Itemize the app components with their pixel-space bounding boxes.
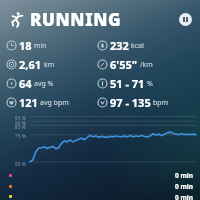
staticText: /km xyxy=(140,60,153,70)
staticText: 0 min xyxy=(175,193,193,200)
staticText: 90 % xyxy=(0,120,26,127)
button[interactable]: 121 xyxy=(7,95,69,110)
button[interactable]: 2,61 xyxy=(7,57,55,72)
button[interactable]: 18 xyxy=(7,38,47,53)
staticText: 232 xyxy=(110,38,129,53)
button[interactable]: 0 min xyxy=(9,182,193,191)
staticText: 0 min xyxy=(175,182,193,191)
staticText: bpm xyxy=(153,98,169,108)
staticText: 64 xyxy=(19,76,32,91)
staticText: % xyxy=(147,79,153,89)
button[interactable]: 0 min xyxy=(9,193,193,200)
button[interactable]: 97 - 135 xyxy=(98,95,169,110)
staticText: 2,61 xyxy=(19,57,42,72)
staticText: 97 - 135 xyxy=(110,95,151,110)
staticText: 121 xyxy=(19,95,38,110)
staticText: 18 xyxy=(19,38,32,53)
staticText: avg bpm xyxy=(40,98,69,108)
staticText: 85 % xyxy=(0,124,26,131)
staticText: min xyxy=(34,41,47,51)
staticText: 75 % xyxy=(0,133,26,140)
button[interactable]: 0 min xyxy=(9,171,193,180)
button[interactable]: 51 - 71 xyxy=(98,76,153,91)
button[interactable]: 64 xyxy=(7,76,54,91)
staticText: 95 % xyxy=(0,115,26,122)
button[interactable]: 6'55" xyxy=(98,57,153,72)
staticText: km xyxy=(44,60,55,70)
staticText: 51 - 71 xyxy=(110,76,145,91)
staticText: 0 min xyxy=(175,171,193,180)
staticText: 50 % xyxy=(0,161,26,168)
button[interactable]: Pause xyxy=(179,13,192,26)
button[interactable]: 232 xyxy=(98,38,144,53)
staticText: kcal xyxy=(131,41,144,51)
staticText: avg % xyxy=(34,79,54,89)
staticText: RUNNING xyxy=(30,8,122,31)
staticText: 6'55" xyxy=(110,57,138,72)
